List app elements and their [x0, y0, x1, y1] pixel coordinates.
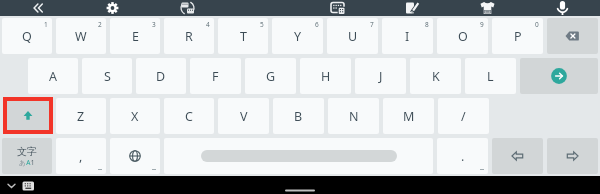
staticText: N: [349, 108, 359, 125]
staticText: C: [185, 108, 193, 125]
staticText: 文字: [17, 145, 37, 158]
staticText: R: [185, 28, 193, 45]
staticText: Y: [294, 28, 302, 45]
button[interactable]: W: [56, 18, 106, 54]
staticText: K: [432, 68, 440, 85]
staticText: 6: [315, 20, 319, 29]
button[interactable]: R: [164, 18, 214, 54]
staticText: E: [132, 28, 139, 45]
staticText: G: [266, 68, 276, 85]
staticText: H: [321, 68, 331, 85]
button[interactable]: H: [300, 58, 351, 94]
staticText: Q: [22, 28, 32, 45]
staticText: /: [461, 108, 466, 125]
staticText: V: [240, 108, 248, 125]
button[interactable]: O: [437, 18, 488, 54]
button[interactable]: A: [28, 58, 78, 94]
staticText: S: [104, 68, 111, 85]
staticText: P: [514, 28, 522, 45]
button[interactable]: D: [136, 58, 186, 94]
staticText: T: [240, 28, 247, 45]
button[interactable]: [300, 0, 375, 16]
staticText: 4: [206, 20, 210, 29]
staticText: 1: [44, 20, 48, 29]
button[interactable]: [450, 0, 525, 16]
button[interactable]: E: [110, 18, 160, 54]
staticText: 0: [535, 20, 539, 29]
button[interactable]: [18, 176, 38, 194]
staticText: L: [487, 68, 494, 85]
staticText: J: [379, 68, 383, 85]
staticText: A: [49, 68, 57, 85]
button[interactable]: ,: [56, 138, 106, 174]
button[interactable]: T: [218, 18, 268, 54]
button[interactable]: U: [327, 18, 378, 54]
button[interactable]: S: [82, 58, 132, 94]
staticText: M: [403, 108, 415, 125]
button[interactable]: F: [190, 58, 241, 94]
button[interactable]: [164, 138, 433, 174]
button[interactable]: [150, 0, 225, 16]
staticText: 9: [480, 20, 484, 29]
button[interactable]: [110, 138, 160, 174]
button[interactable]: M: [383, 98, 434, 134]
button[interactable]: B: [273, 98, 324, 134]
staticText: X: [131, 108, 139, 125]
button[interactable]: C: [164, 98, 214, 134]
staticText: 8: [425, 20, 429, 29]
staticText: 3: [152, 20, 156, 29]
button[interactable]: X: [110, 98, 160, 134]
staticText: あA1: [19, 158, 36, 167]
staticText: 2: [98, 20, 102, 29]
button[interactable]: /: [438, 98, 489, 134]
button[interactable]: .: [437, 138, 488, 174]
button[interactable]: [520, 58, 598, 94]
staticText: W: [75, 28, 87, 45]
button[interactable]: L: [465, 58, 516, 94]
button[interactable]: V: [218, 98, 269, 134]
button[interactable]: 文字: [2, 138, 52, 174]
button[interactable]: [3, 97, 53, 134]
staticText: 5: [260, 20, 264, 29]
button[interactable]: [0, 176, 18, 194]
button[interactable]: J: [355, 58, 406, 94]
button[interactable]: [547, 18, 598, 54]
staticText: F: [212, 68, 219, 85]
button[interactable]: [547, 138, 598, 174]
staticText: .: [461, 148, 465, 165]
button[interactable]: [0, 0, 75, 16]
staticText: I: [405, 28, 410, 45]
staticText: 7: [370, 20, 374, 29]
button[interactable]: K: [410, 58, 461, 94]
button[interactable]: [525, 0, 600, 16]
staticText: Z: [77, 108, 85, 125]
button[interactable]: [75, 0, 150, 16]
button[interactable]: Z: [56, 98, 106, 134]
button[interactable]: N: [328, 98, 379, 134]
staticText: D: [156, 68, 166, 85]
button[interactable]: [492, 138, 543, 174]
button[interactable]: [375, 0, 450, 16]
staticText: O: [458, 28, 468, 45]
button[interactable]: G: [245, 58, 296, 94]
button[interactable]: P: [492, 18, 543, 54]
staticText: B: [294, 108, 303, 125]
staticText: ,: [79, 148, 83, 165]
button[interactable]: Y: [272, 18, 323, 54]
staticText: U: [348, 28, 358, 45]
button[interactable]: Q: [2, 18, 52, 54]
button[interactable]: I: [382, 18, 433, 54]
